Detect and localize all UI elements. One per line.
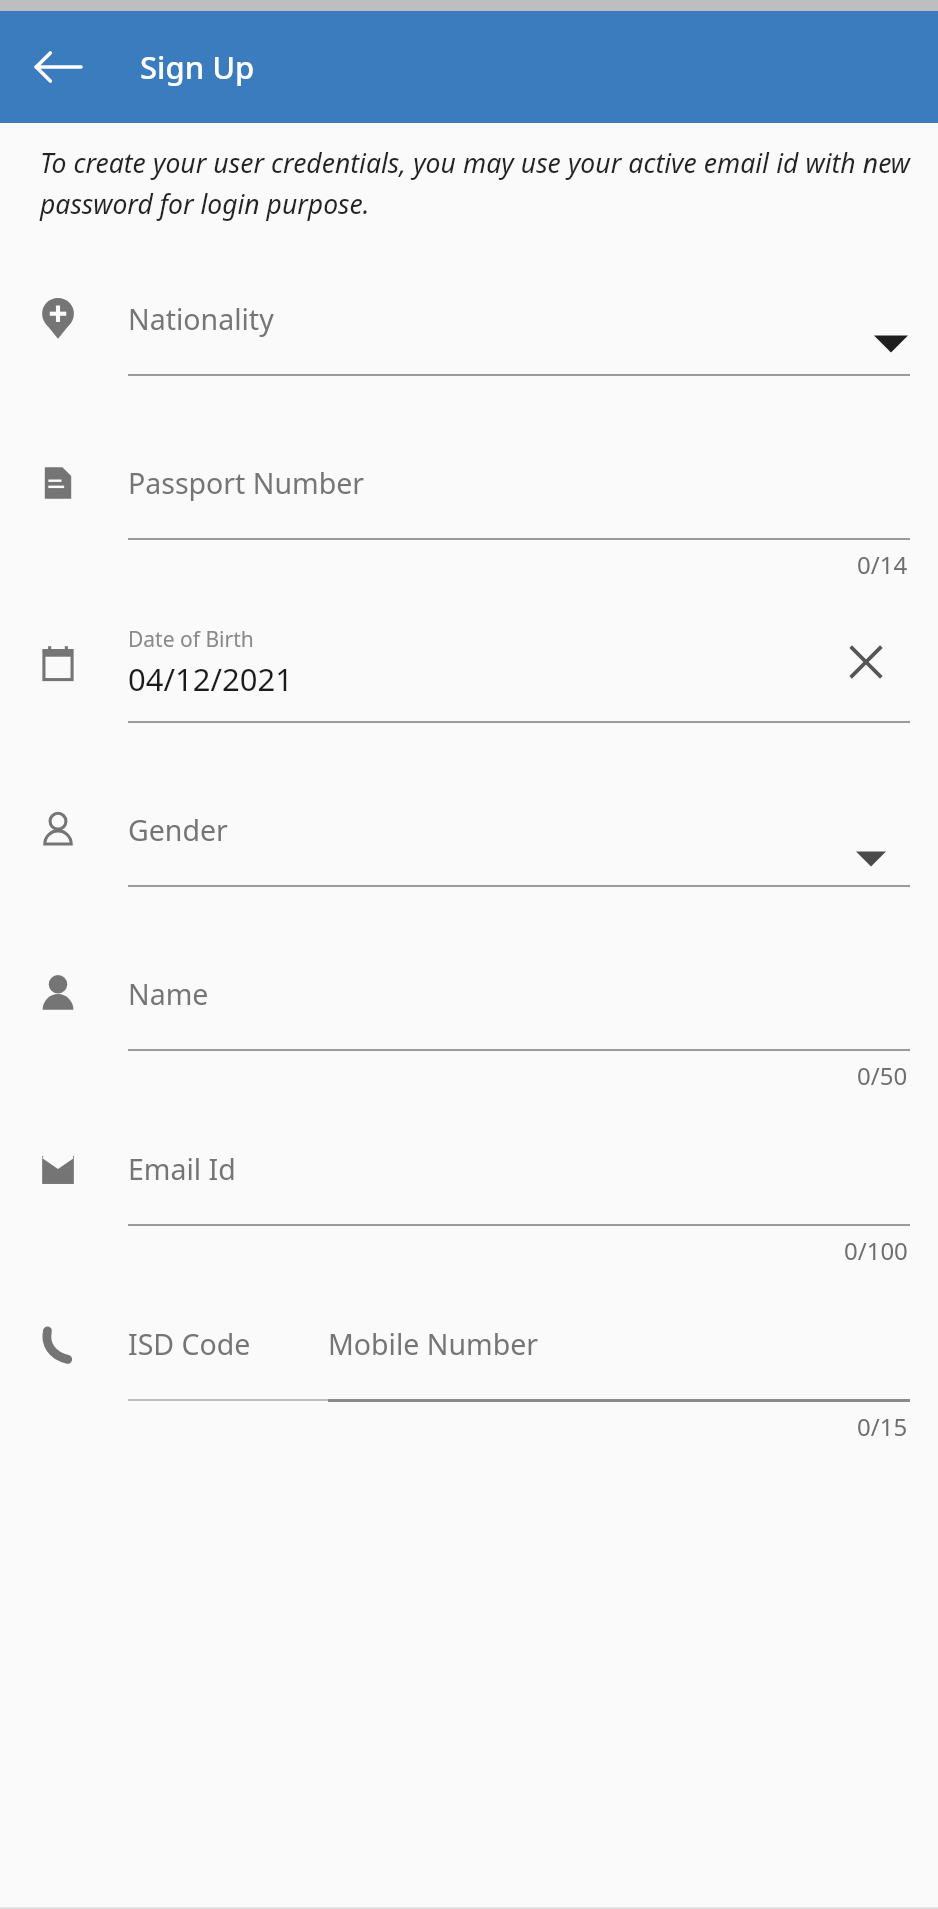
button[interactable]: Nationality	[0, 264, 938, 428]
staticText: ISD Code	[128, 1325, 251, 1364]
staticText: Nationality	[128, 300, 274, 339]
button[interactable]: Passport	[0, 428, 938, 603]
staticText: 04/12/2021	[128, 658, 293, 700]
staticText: 0/15	[857, 1410, 908, 1443]
staticText: Sign Up	[140, 46, 255, 88]
button[interactable]: ISD Code	[128, 1325, 328, 1364]
staticText: Mobile Number	[328, 1325, 539, 1364]
staticText: 0/100	[844, 1234, 908, 1267]
button[interactable]: Email	[0, 1114, 938, 1289]
staticText: Passport Number	[128, 464, 365, 503]
staticText: 0/50	[857, 1059, 908, 1092]
staticText: Email Id	[128, 1150, 236, 1189]
button[interactable]: Clear	[842, 638, 890, 686]
button[interactable]: Gender	[0, 775, 938, 939]
staticText: Date of Birth	[128, 625, 254, 654]
staticText: Gender	[128, 811, 228, 850]
staticText: Name	[128, 975, 209, 1014]
button[interactable]: Name	[0, 939, 938, 1114]
staticText: To create your user credentials, you may…	[40, 145, 910, 222]
button[interactable]: Date of Birth	[0, 603, 938, 775]
staticText: 0/14	[857, 548, 908, 581]
button[interactable]: Mobile Number	[328, 1325, 539, 1364]
button[interactable]: Back	[26, 35, 90, 99]
